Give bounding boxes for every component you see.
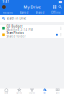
staticText: Offline [51,11,61,14]
button[interactable]: Q3 Budget [0,25,64,31]
button[interactable]: Home [0,88,13,100]
button[interactable]: Recent [0,10,16,15]
button[interactable]: Search in Drive [0,15,64,22]
button[interactable]: Switch layout [51,3,58,10]
staticText: ▮▮▮ [58,0,61,3]
button[interactable]: Starred [13,88,26,100]
staticText: Q3 Budget [6,25,22,28]
staticText: My Drive [23,4,40,10]
staticText: Shared folder [6,35,25,38]
button[interactable]: Starred [16,10,32,15]
button[interactable]: Files [38,88,51,100]
button[interactable]: Team Photos [0,31,64,38]
staticText: Search in Drive [7,17,27,20]
button[interactable]: More options [59,31,62,38]
staticText: Files [43,92,46,94]
staticText: Home [4,92,8,94]
button[interactable]: Shared [32,10,48,15]
staticText: More [56,92,60,94]
button[interactable]: More [51,88,64,100]
staticText: Shared [29,92,35,94]
button[interactable]: Shared [26,88,38,100]
staticText: Team Photos [6,31,23,35]
button[interactable]: Offline [48,10,64,15]
button[interactable]: Search [58,3,64,10]
staticText: Recent [3,11,13,14]
staticText: Starred [19,11,28,14]
staticText: Starred [16,92,22,94]
button[interactable]: More options [59,25,62,31]
staticText: 9:41 [2,0,9,3]
button[interactable]: Account [0,3,7,10]
staticText: Shared [35,11,44,14]
staticText: Modified 2:14 PM [6,28,32,32]
